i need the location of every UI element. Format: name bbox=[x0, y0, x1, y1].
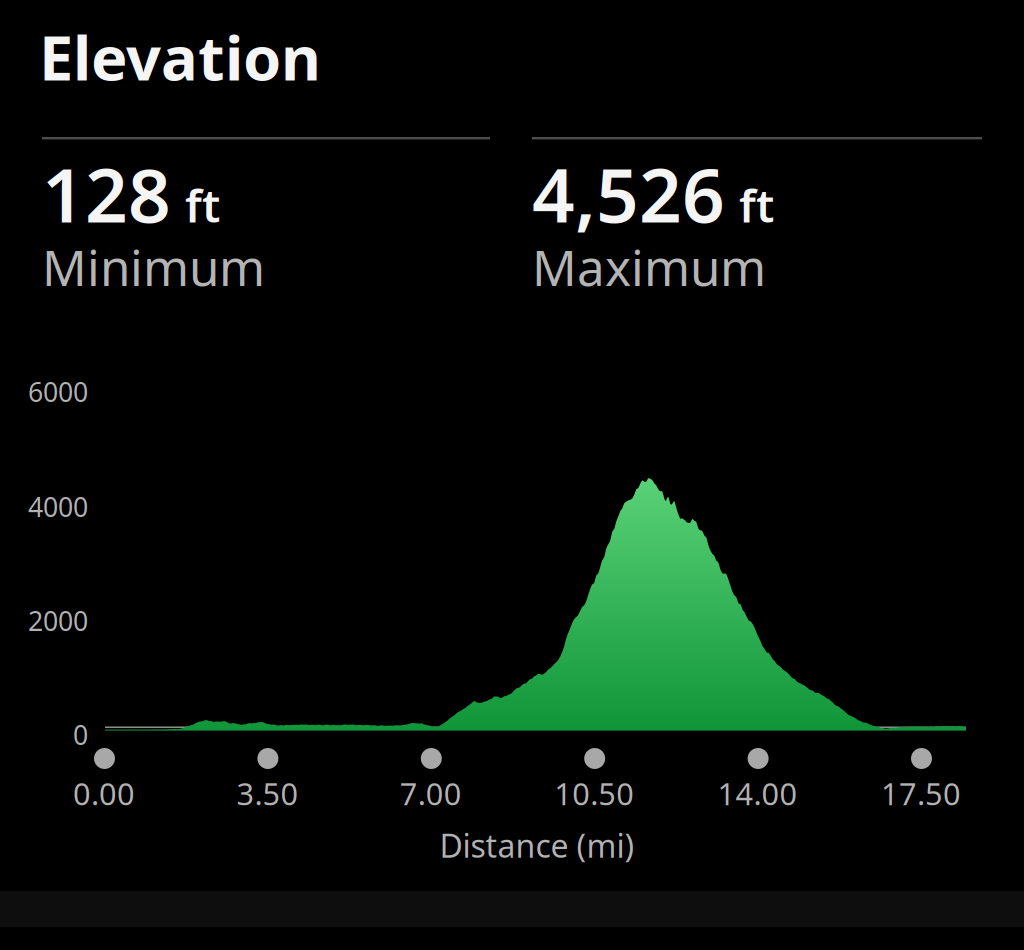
staticText: 3.50 bbox=[236, 773, 298, 814]
staticText: 4000 bbox=[28, 489, 88, 524]
staticText: Distance (mi) bbox=[439, 824, 634, 866]
button[interactable]: 4,526 bbox=[532, 132, 982, 292]
staticText: 0.00 bbox=[73, 773, 135, 814]
staticText: 7.00 bbox=[400, 773, 462, 814]
staticText: Minimum bbox=[42, 234, 265, 299]
staticText: ft bbox=[185, 175, 220, 235]
staticText: 128 bbox=[42, 144, 171, 243]
staticText: 17.50 bbox=[881, 773, 961, 814]
staticText: ft bbox=[739, 175, 774, 235]
staticText: 4,526 bbox=[532, 144, 725, 243]
staticText: 10.50 bbox=[554, 773, 634, 814]
staticText: 2000 bbox=[28, 603, 88, 638]
staticText: 14.00 bbox=[718, 773, 798, 814]
button[interactable]: 128 bbox=[42, 132, 490, 292]
staticText: Maximum bbox=[532, 234, 766, 299]
staticText: 0 bbox=[73, 717, 88, 752]
staticText: Elevation bbox=[39, 16, 321, 97]
staticText: 6000 bbox=[28, 374, 88, 409]
